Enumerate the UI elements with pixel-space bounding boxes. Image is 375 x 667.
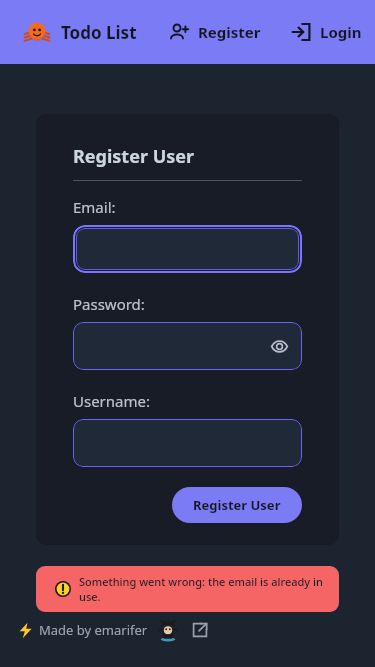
button[interactable]: Register User bbox=[172, 487, 302, 523]
button[interactable]: Show password bbox=[267, 334, 291, 358]
button[interactable] bbox=[73, 419, 302, 467]
staticText: Register bbox=[198, 22, 261, 42]
staticText: Something went wrong: the email is alrea… bbox=[79, 574, 339, 604]
staticText: Email: bbox=[73, 197, 116, 217]
button[interactable]: Login bbox=[289, 16, 364, 48]
staticText: Register User bbox=[73, 144, 195, 169]
button[interactable]: Something went wrong: the email is alrea… bbox=[36, 566, 339, 612]
button[interactable]: Todo List bbox=[22, 15, 139, 49]
button[interactable] bbox=[76, 228, 299, 270]
staticText: Made by emarifer bbox=[39, 621, 148, 639]
button[interactable]: Register bbox=[167, 16, 263, 48]
staticText: Password: bbox=[73, 294, 145, 314]
staticText: Todo List bbox=[61, 21, 137, 44]
staticText: Username: bbox=[73, 391, 150, 411]
button[interactable]: Show password bbox=[73, 322, 302, 370]
button[interactable]: Made by emarifer bbox=[14, 613, 214, 647]
button[interactable]: Open external link bbox=[189, 619, 211, 641]
staticText: Register User bbox=[193, 496, 281, 514]
staticText: Login bbox=[320, 22, 362, 42]
